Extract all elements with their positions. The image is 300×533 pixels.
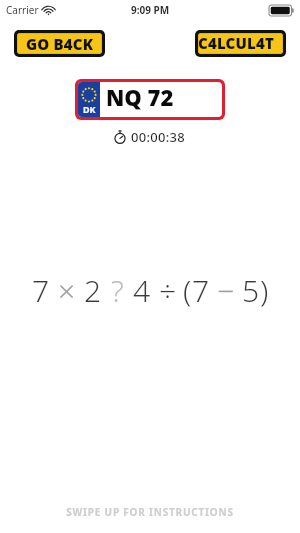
button[interactable]: DK (75, 79, 225, 120)
button[interactable]: GO B4CK (14, 30, 105, 57)
button[interactable]: C4LCUL4T3 (195, 30, 286, 57)
staticText: GO B4CK (26, 34, 94, 54)
staticText: 2 (84, 270, 102, 311)
staticText: DK (83, 103, 96, 115)
other: Go back (14, 30, 105, 57)
staticText: 4 (133, 270, 151, 311)
staticText: Carrier (6, 3, 39, 17)
staticText: ? (111, 270, 124, 311)
staticText: 00:00:38 (131, 128, 186, 146)
staticText: C4LCUL4T3 (198, 33, 283, 54)
staticText: 7 (192, 270, 210, 311)
staticText: 7 (32, 270, 50, 311)
staticText: 9:09 PM (131, 3, 170, 17)
staticText: ÷ (159, 270, 177, 311)
staticText: ) (260, 270, 269, 311)
staticText: ( (183, 270, 192, 311)
staticText: SWIPE UP FOR INSTRUCTIONS (66, 505, 234, 519)
staticText: NQ 72 475 (106, 82, 215, 117)
staticText: 5 (242, 270, 260, 311)
staticText: × (58, 270, 76, 311)
button[interactable]: SWIPE UP FOR INSTRUCTIONS (0, 505, 300, 519)
staticText: − (217, 270, 235, 311)
